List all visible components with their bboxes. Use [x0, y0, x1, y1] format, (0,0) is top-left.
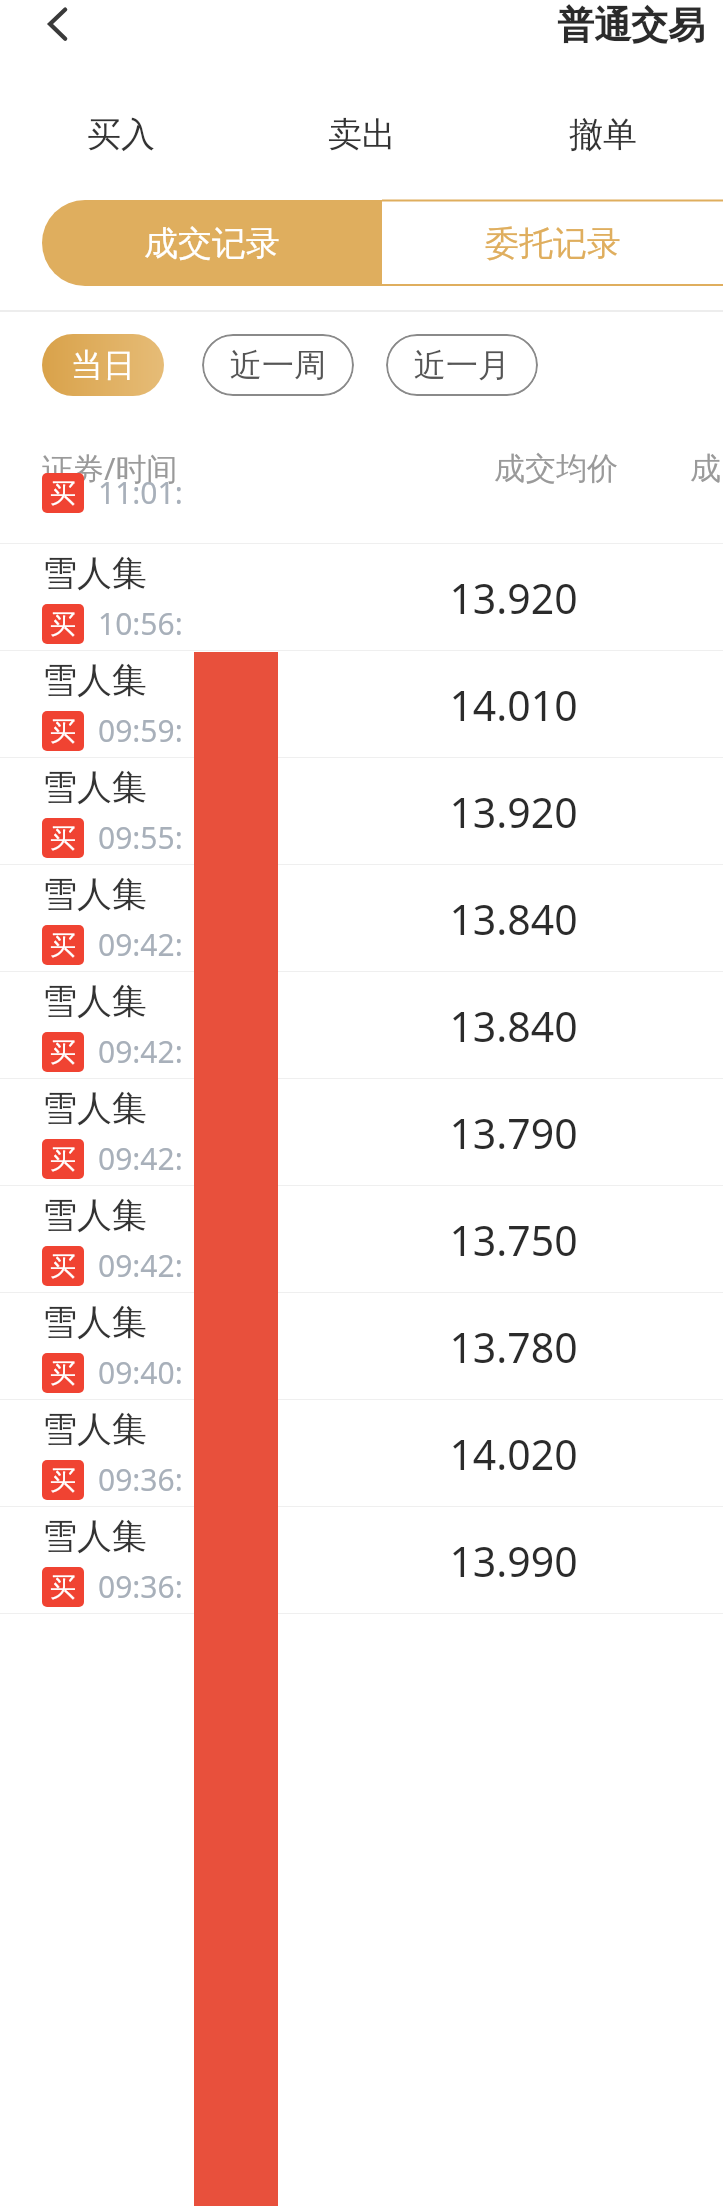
button[interactable]: 近一月	[386, 334, 538, 396]
button[interactable]: 雪人集	[0, 544, 723, 651]
staticText: 近一月	[414, 345, 510, 385]
staticText: 09:55:	[98, 817, 183, 858]
staticText: 雪人集	[42, 979, 147, 1023]
staticText: 13.990	[449, 1533, 578, 1589]
staticText: 买入	[87, 113, 155, 156]
button[interactable]: 撤单	[482, 86, 723, 182]
staticText: 13.790	[449, 1105, 578, 1161]
staticText: 成交均价	[494, 449, 618, 488]
staticText: 撤单	[569, 113, 637, 156]
staticText: 买	[50, 1036, 76, 1069]
staticText: 13.750	[449, 1212, 578, 1268]
staticText: 13.780	[449, 1319, 578, 1375]
staticText: 09:36:	[98, 1566, 183, 1607]
staticText: 09:36:	[98, 1459, 183, 1500]
staticText: 雪人集	[42, 1193, 147, 1237]
staticText: 买	[50, 608, 76, 641]
staticText: 普通交易	[557, 2, 705, 49]
staticText: 买	[50, 477, 76, 510]
staticText: 14.010	[449, 677, 578, 733]
button[interactable]: 雪人集	[0, 1186, 723, 1293]
staticText: 09:42:	[98, 1138, 183, 1179]
staticText: 卖出	[328, 113, 396, 156]
staticText: 雪人集	[42, 1407, 147, 1451]
staticText: 雪人集	[42, 1514, 147, 1558]
button[interactable]: 雪人集	[0, 758, 723, 865]
button[interactable]: 雪人集	[0, 1293, 723, 1400]
staticText: 13.920	[449, 570, 578, 626]
staticText: 当日	[71, 345, 135, 385]
staticText: 14.020	[449, 1426, 578, 1482]
staticText: 成	[690, 449, 721, 488]
staticText: 近一周	[230, 345, 326, 385]
button[interactable]: 雪人集	[0, 1079, 723, 1186]
staticText: 09:42:	[98, 1031, 183, 1072]
staticText: 雪人集	[42, 765, 147, 809]
staticText: 买	[50, 1571, 76, 1604]
staticText: 委托记录	[485, 222, 621, 265]
staticText: 买	[50, 929, 76, 962]
button[interactable]: 当日	[42, 334, 164, 396]
button[interactable]: 委托记录	[382, 200, 723, 286]
staticText: 雪人集	[42, 658, 147, 702]
staticText: 11:01:	[98, 472, 183, 513]
staticText: 雪人集	[42, 551, 147, 595]
staticText: 雪人集	[42, 872, 147, 916]
button[interactable]: 近一周	[202, 334, 354, 396]
staticText: 买	[50, 715, 76, 748]
button[interactable]: 成交记录	[42, 200, 382, 286]
staticText: 09:59:	[98, 710, 183, 751]
button[interactable]: 雪人集	[0, 651, 723, 758]
staticText: 买	[50, 1250, 76, 1283]
button[interactable]: 雪人集	[0, 865, 723, 972]
staticText: 成交记录	[144, 222, 280, 265]
button[interactable]: 买入	[0, 86, 241, 182]
staticText: 13.920	[449, 784, 578, 840]
button[interactable]: 雪人集	[0, 972, 723, 1079]
staticText: 买	[50, 822, 76, 855]
staticText: 买	[50, 1464, 76, 1497]
staticText: 证券/时间	[42, 447, 178, 489]
button[interactable]: 卖出	[241, 86, 482, 182]
staticText: 13.840	[449, 998, 578, 1054]
button[interactable]: Back	[20, 0, 96, 62]
staticText: 买	[50, 1143, 76, 1176]
staticText: 09:42:	[98, 1245, 183, 1286]
staticText: 13.840	[449, 891, 578, 947]
button[interactable]: 雪人集	[0, 1400, 723, 1507]
staticText: 雪人集	[42, 1086, 147, 1130]
staticText: 09:40:	[98, 1352, 183, 1393]
staticText: 09:42:	[98, 924, 183, 965]
staticText: 雪人集	[42, 1300, 147, 1344]
button[interactable]: 雪人集	[0, 1507, 723, 1614]
staticText: 10:56:	[98, 603, 183, 644]
staticText: 买	[50, 1357, 76, 1390]
